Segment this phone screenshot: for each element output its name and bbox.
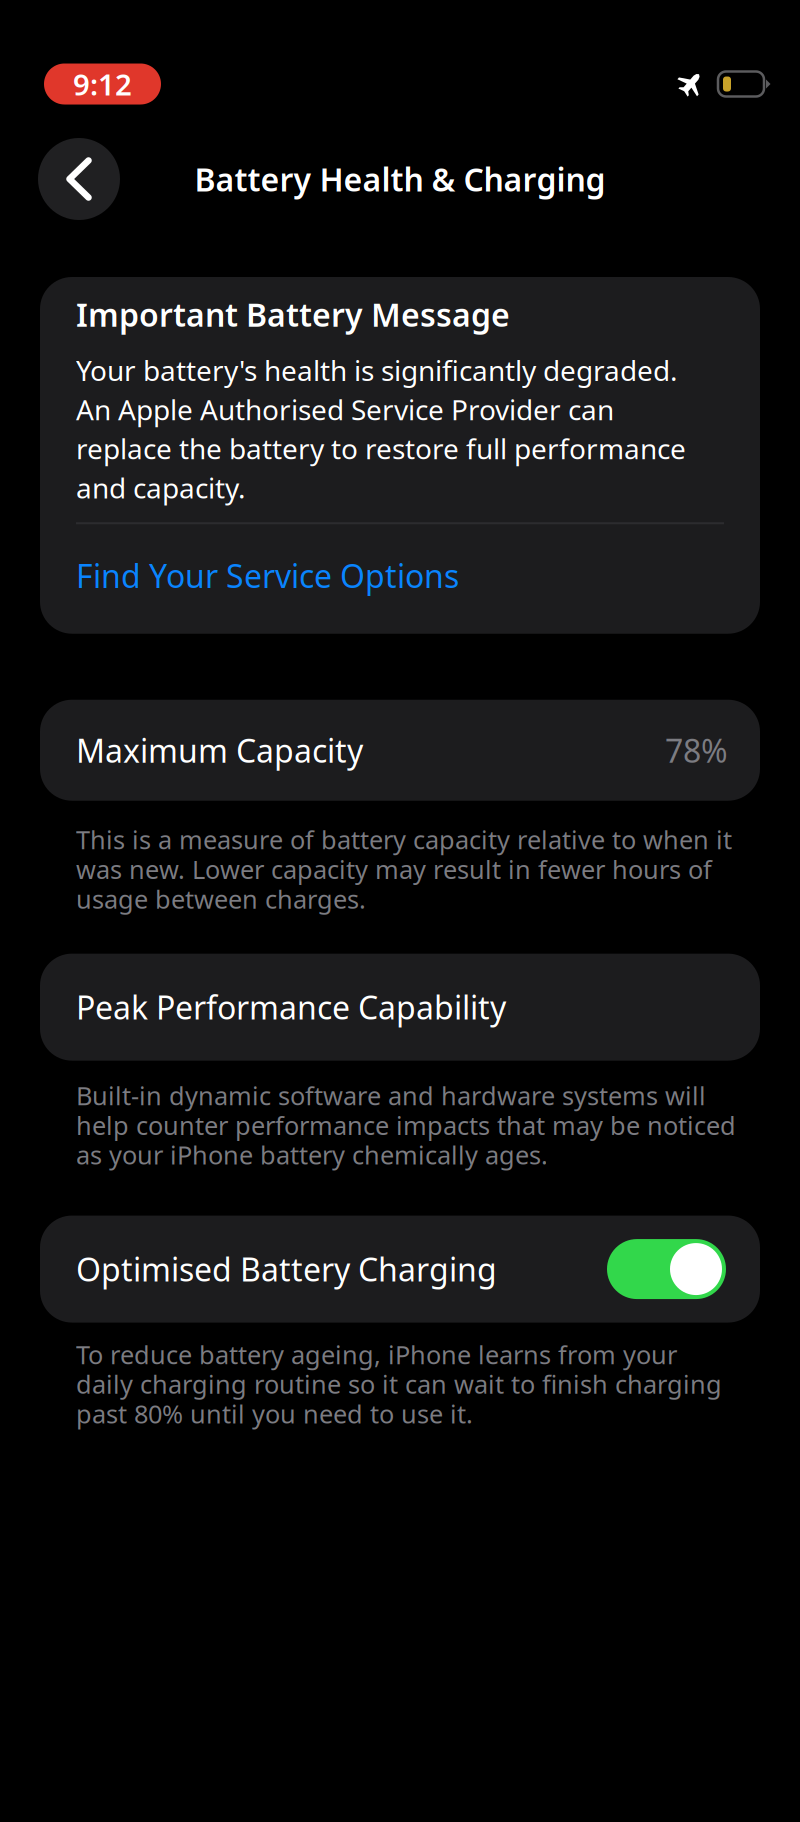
button[interactable]: Maximum Capacity — [40, 700, 760, 801]
button[interactable]: Find Your Service Options — [76, 524, 724, 634]
staticText: Built-in dynamic software and hardware s… — [76, 1079, 736, 1171]
staticText: To reduce battery ageing, iPhone learns … — [76, 1338, 722, 1430]
staticText: Peak Performance Capability — [76, 986, 506, 1028]
staticText: Your battery's health is significantly d… — [76, 351, 686, 506]
staticText: Maximum Capacity — [76, 729, 363, 771]
button[interactable]: Back — [38, 138, 120, 220]
staticText: Find Your Service Options — [76, 554, 459, 597]
staticText: This is a measure of battery capacity re… — [76, 823, 732, 916]
button[interactable]: Peak Performance Capability — [40, 954, 760, 1061]
staticText: 78% — [665, 729, 728, 771]
staticText: Optimised Battery Charging — [76, 1248, 497, 1290]
staticText: 9:12 — [73, 64, 132, 103]
staticText: Important Battery Message — [76, 293, 510, 335]
button[interactable]: Optimised Battery Charging — [607, 1239, 726, 1299]
staticText: Battery Health & Charging — [194, 158, 605, 200]
